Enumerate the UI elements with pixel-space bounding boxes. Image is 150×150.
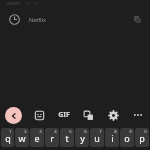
staticText: 2 — [24, 129, 27, 135]
staticText: r — [50, 132, 54, 144]
button[interactable]: u — [90, 128, 104, 147]
button[interactable]: i — [105, 128, 119, 147]
button[interactable]: q — [1, 128, 14, 147]
button[interactable]: p — [135, 128, 149, 147]
staticText: y — [80, 132, 85, 144]
button[interactable]: e — [30, 128, 44, 147]
staticText: q — [5, 132, 11, 144]
staticText: t — [65, 132, 69, 144]
staticText: o — [124, 132, 130, 144]
staticText: 0 — [144, 129, 147, 135]
staticText: 4 — [54, 129, 57, 135]
staticText: 5 — [69, 129, 72, 135]
button[interactable]: Stickers — [31, 107, 47, 123]
button[interactable]: Expand toolbar — [5, 107, 22, 124]
staticText: Netflix — [29, 16, 46, 23]
staticText: 3 — [39, 129, 42, 135]
button[interactable]: r — [45, 128, 59, 147]
staticText: 1 — [9, 129, 12, 135]
button[interactable]: y — [75, 128, 89, 147]
staticText: GIF — [58, 110, 70, 120]
staticText: e — [34, 132, 40, 144]
button[interactable]: t — [60, 128, 74, 147]
staticText: i — [111, 132, 114, 144]
staticText: 9 — [129, 129, 132, 135]
staticText: w — [18, 132, 26, 144]
staticText: 8 — [114, 129, 117, 135]
staticText: u — [94, 132, 100, 144]
button[interactable]: More options — [130, 107, 145, 123]
staticText: p — [139, 132, 145, 144]
button[interactable]: w — [15, 128, 29, 147]
button[interactable]: Settings — [105, 107, 121, 123]
other: Recent clipboard — [8, 13, 21, 26]
staticText: 6 — [84, 129, 87, 135]
staticText: 7 — [99, 129, 102, 135]
button[interactable]: Recent clipboard — [0, 8, 150, 30]
button[interactable]: Clipboard item — [132, 14, 142, 24]
button[interactable]: o — [120, 128, 134, 147]
button[interactable]: GIF — [56, 107, 72, 123]
button[interactable]: Translate — [80, 107, 96, 123]
